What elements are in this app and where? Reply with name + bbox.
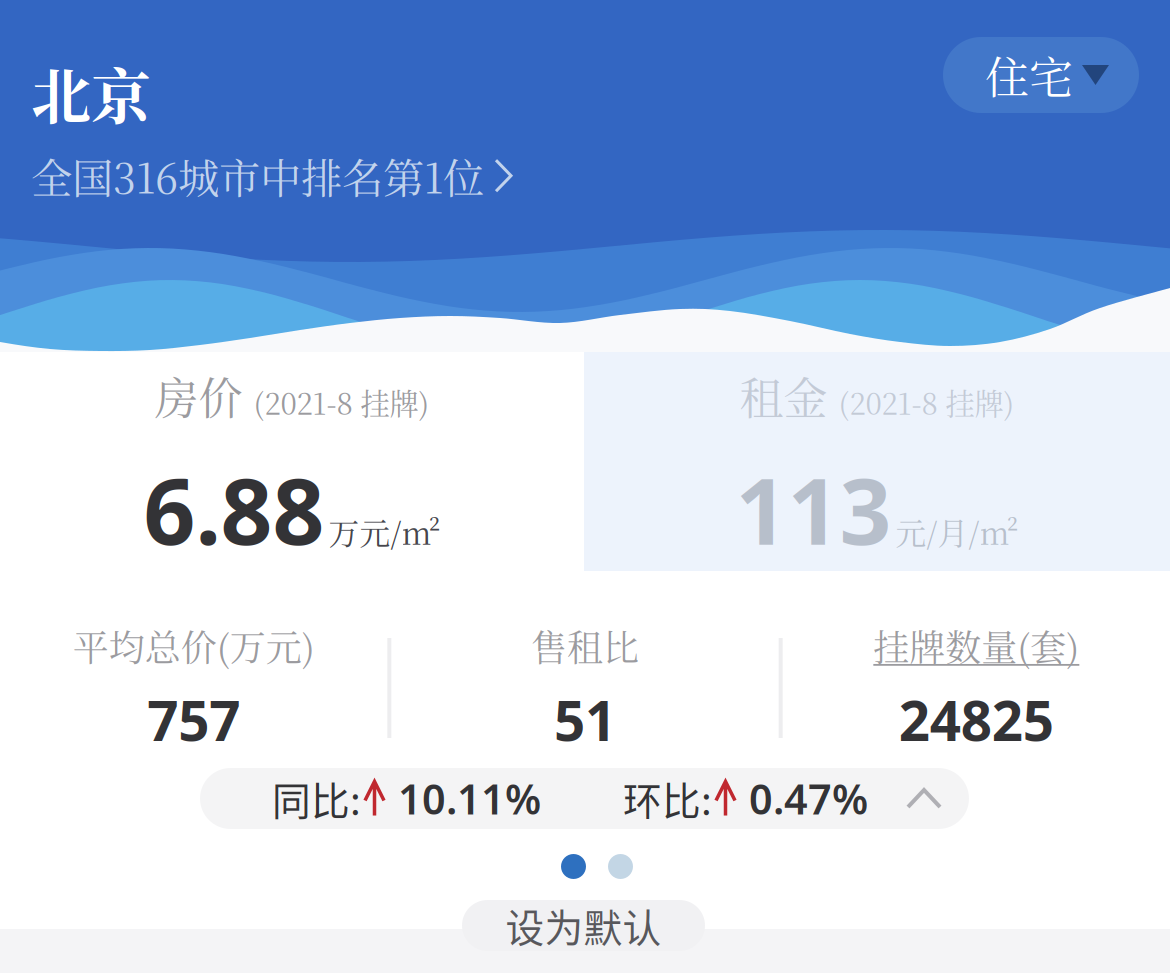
staticText: 北京 [31, 50, 151, 136]
staticText: 6.88 [143, 449, 324, 570]
staticText: 元/月/m² [895, 509, 1018, 554]
button[interactable]: 平均总价(万元) [0, 634, 387, 742]
staticText: 757 [147, 684, 240, 756]
staticText: (2021-8 挂牌) [838, 381, 1014, 423]
staticText: 24825 [899, 684, 1054, 756]
staticText: 设为默认 [505, 897, 661, 953]
staticText: 平均总价(万元) [73, 620, 315, 671]
button[interactable]: 挂牌数量(套) [783, 634, 1170, 742]
button[interactable]: 住宅 [943, 37, 1139, 113]
staticText: 住宅 [985, 43, 1073, 107]
staticText: 全国316城市中排名第1位 [31, 146, 484, 205]
staticText: 房价 [154, 364, 242, 427]
staticText: 同比: [272, 770, 361, 826]
staticText: 售租比 [531, 620, 639, 671]
staticText: 113 [735, 449, 891, 570]
staticText: 10.11% [398, 771, 541, 826]
staticText: 挂牌数量(套) [873, 620, 1079, 671]
staticText: 51 [554, 684, 616, 756]
button[interactable]: 租金 [584, 382, 1170, 552]
staticText: 租金 [739, 364, 827, 427]
button[interactable]: 售租比 [391, 634, 779, 742]
button[interactable]: 同比: [200, 768, 969, 829]
staticText: 环比: [623, 770, 712, 826]
staticText: 万元/m² [328, 509, 440, 554]
button[interactable]: 房价 [0, 382, 584, 552]
button[interactable]: 设为默认 [462, 900, 705, 951]
staticText: 0.47% [749, 771, 868, 826]
staticText: (2021-8 挂牌) [253, 381, 429, 423]
